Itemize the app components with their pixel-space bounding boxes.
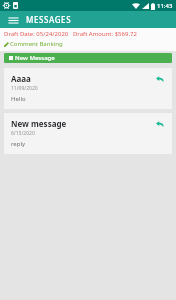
- staticText: Hello: [11, 95, 26, 103]
- staticText: Comment Banking: [10, 40, 63, 48]
- button[interactable]: Comment Banking: [4, 40, 63, 48]
- button[interactable]: New message: [4, 113, 172, 154]
- staticText: Aaaa: [11, 73, 31, 84]
- staticText: 6/15/2020: [11, 130, 35, 137]
- staticText: MESSAGES: [26, 14, 72, 25]
- staticText: New Message: [15, 54, 55, 62]
- staticText: Draft Date: 05/24/2020 Draft Amount: $56…: [4, 30, 137, 38]
- staticText: reply: [11, 140, 26, 148]
- button[interactable]: Reply: [154, 73, 166, 85]
- staticText: New message: [11, 118, 67, 129]
- button[interactable]: New Message: [4, 53, 172, 63]
- button[interactable]: Reply: [154, 118, 166, 130]
- staticText: 11:43: [157, 2, 173, 10]
- staticText: 11/09/2020: [11, 85, 38, 92]
- button[interactable]: Aaaa: [4, 68, 172, 109]
- button[interactable]: Open navigation menu: [6, 13, 20, 27]
